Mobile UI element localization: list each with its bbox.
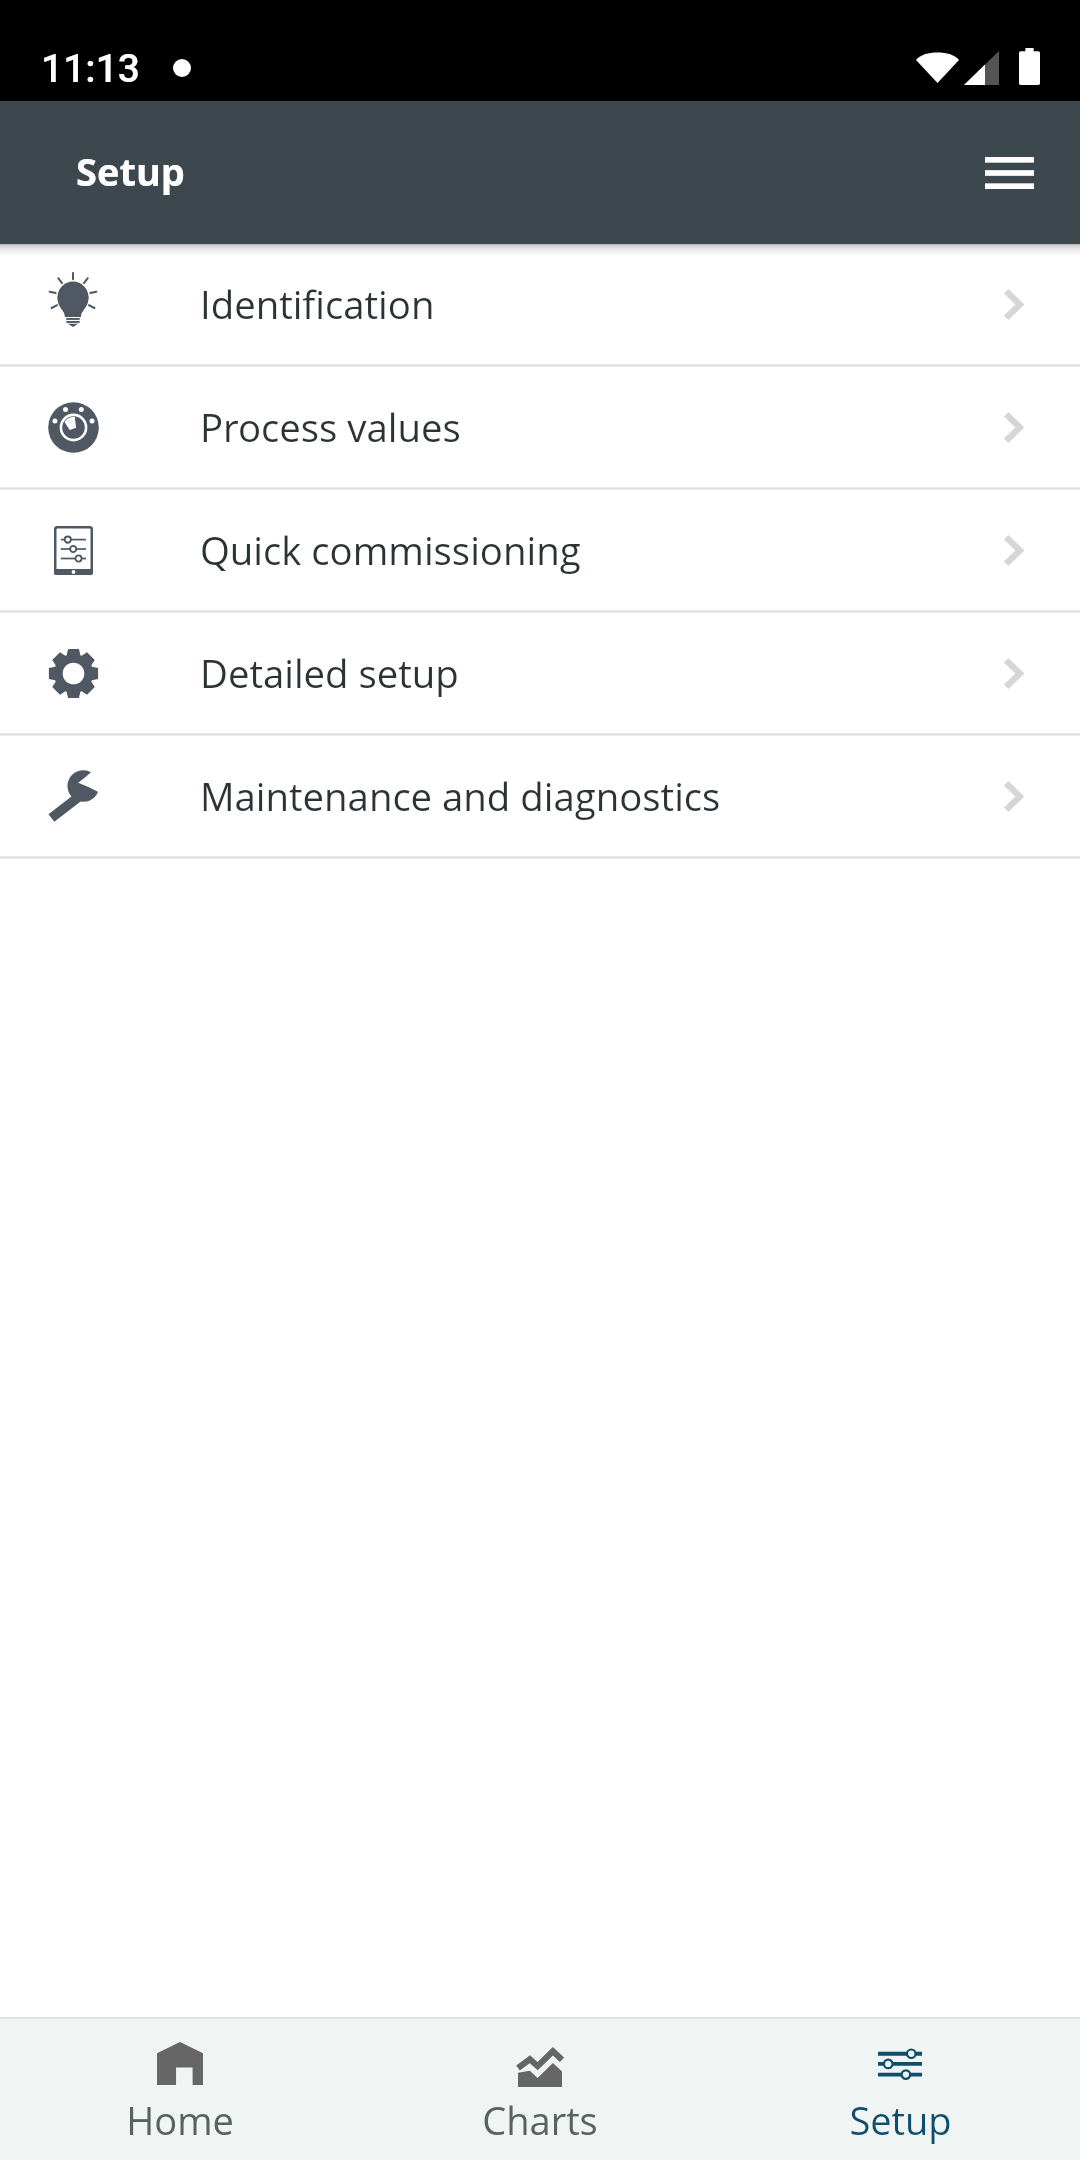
staticText: 11:13 — [41, 46, 141, 92]
staticText: Setup — [849, 2094, 952, 2146]
button[interactable]: Detailed setup — [0, 613, 1080, 733]
staticText: Charts — [482, 2094, 598, 2146]
staticText: Home — [126, 2094, 234, 2146]
staticText: Identification — [200, 278, 435, 330]
button[interactable]: Maintenance and diagnostics — [0, 736, 1080, 856]
button[interactable]: Charts — [360, 2019, 720, 2160]
button[interactable]: Identification — [0, 244, 1080, 364]
button[interactable]: Menu — [961, 125, 1057, 221]
staticText: Setup — [76, 145, 185, 197]
staticText: Detailed setup — [200, 647, 459, 699]
button[interactable]: Home — [0, 2019, 360, 2160]
button[interactable]: Process values — [0, 367, 1080, 487]
staticText: Process values — [200, 401, 461, 453]
staticText: Quick commissioning — [200, 524, 581, 576]
button[interactable]: Setup — [720, 2019, 1080, 2160]
staticText: Maintenance and diagnostics — [200, 770, 721, 822]
button[interactable]: Quick commissioning — [0, 490, 1080, 610]
